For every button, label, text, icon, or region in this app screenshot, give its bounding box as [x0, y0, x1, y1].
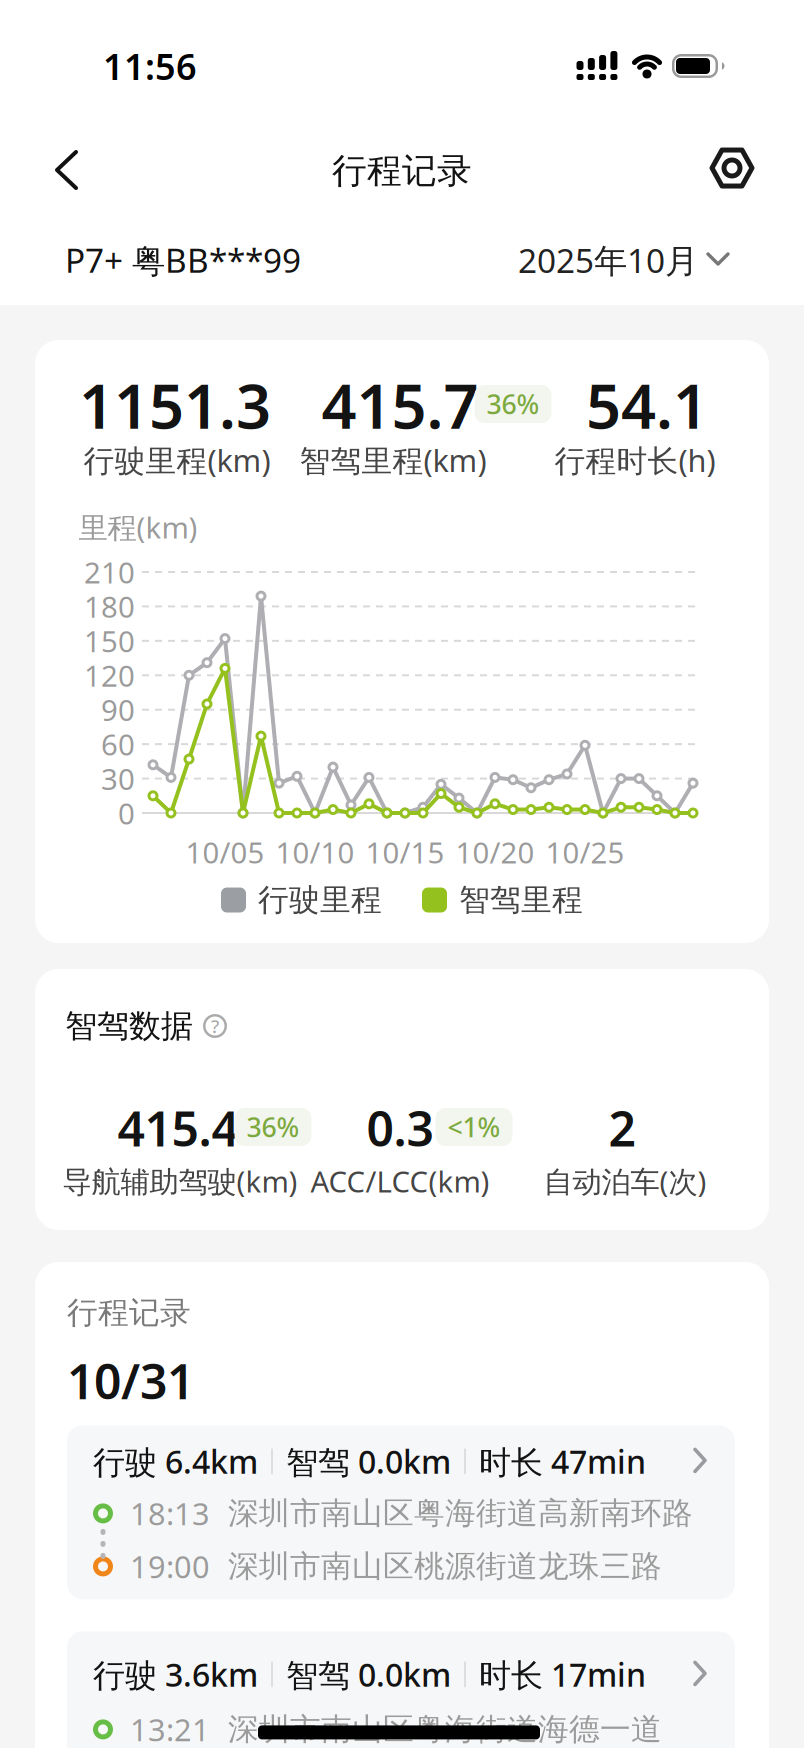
staticText: ? [211, 1014, 219, 1038]
staticText: 210 [84, 552, 135, 591]
staticText: 10/20 [455, 832, 534, 871]
staticText: 10/15 [365, 832, 444, 871]
staticText: 导航辅助驾驶(km) [62, 1161, 297, 1200]
staticText: 智驾 0.0km [286, 1440, 451, 1483]
staticText: 0 [118, 793, 135, 832]
button[interactable]: Settings [700, 138, 764, 198]
staticText: 36% [246, 1109, 299, 1145]
staticText: 54.1 [586, 364, 708, 446]
staticText: 行驶 3.6km [93, 1653, 258, 1696]
staticText: 深圳市南山区桃源街道龙珠三路 [228, 1548, 662, 1585]
staticText: 里程(km) [78, 507, 197, 546]
staticText: 行程记录 [332, 150, 472, 192]
staticText: 120 [84, 656, 135, 695]
staticText: 415.4 [117, 1096, 238, 1160]
staticText: 行驶 6.4km [93, 1440, 258, 1483]
button[interactable]: 行驶 6.4km [67, 1425, 735, 1599]
staticText: 行程时长(h) [554, 440, 715, 480]
staticText: 行驶里程 [258, 881, 382, 919]
staticText: 11:56 [103, 42, 197, 90]
staticText: 18:13 [130, 1493, 210, 1534]
staticText: 2025年10月 [518, 238, 698, 282]
staticText: 10/10 [275, 832, 354, 871]
staticText: 智驾数据 [65, 1006, 193, 1046]
staticText: 智驾里程 [459, 881, 583, 919]
staticText: 19:00 [130, 1546, 210, 1587]
staticText: <1% [447, 1109, 500, 1145]
staticText: 0.3 [366, 1096, 433, 1160]
staticText: 10/31 [67, 1349, 194, 1412]
staticText: 深圳市南山区粤海街道高新南环路 [228, 1495, 693, 1532]
staticText: 时长 47min [479, 1440, 646, 1483]
staticText: ACC/LCC(km) [310, 1161, 489, 1200]
staticText: 90 [101, 690, 135, 729]
staticText: 1151.3 [79, 364, 271, 446]
button[interactable]: 行驶 3.6km [67, 1631, 735, 1748]
staticText: 415.7 [321, 364, 478, 446]
staticText: 智驾 0.0km [286, 1653, 451, 1696]
staticText: 150 [84, 621, 135, 660]
staticText: 30 [101, 759, 135, 798]
staticText: 180 [84, 587, 135, 626]
staticText: 智驾里程(km) [299, 440, 486, 480]
button[interactable]: 2025年10月 [518, 238, 730, 282]
staticText: P7+ 粤BB***99 [65, 238, 301, 282]
staticText: 13:21 [130, 1709, 210, 1748]
staticText: 36% [486, 386, 539, 422]
staticText: 60 [101, 725, 135, 764]
staticText: 自动泊车(次) [543, 1161, 706, 1200]
staticText: 行程记录 [67, 1294, 191, 1332]
staticText: 行驶里程(km) [83, 440, 270, 480]
staticText: 时长 17min [479, 1653, 646, 1696]
staticText: 2 [608, 1096, 635, 1160]
staticText: 10/25 [545, 832, 624, 871]
staticText: 深圳市南山区粤海街道海德一道 [228, 1711, 662, 1748]
button[interactable]: Help [203, 1014, 227, 1038]
staticText: 10/05 [185, 832, 264, 871]
button[interactable]: Back [43, 140, 91, 200]
